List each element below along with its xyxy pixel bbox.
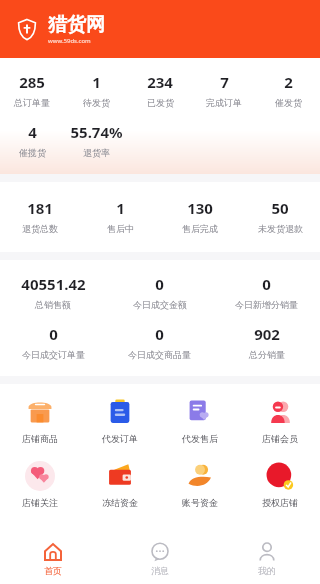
button[interactable]: 首页 [0,534,106,584]
button[interactable]: 0 [106,274,213,310]
staticText: 完成订单 [206,97,242,108]
staticText: 待发货 [83,97,110,108]
button[interactable]: 冻结资金 [80,460,160,508]
staticText: 已发货 [147,97,174,108]
staticText: 1 [116,198,125,218]
button[interactable]: 50 [240,198,320,234]
staticText: 催发货 [275,97,302,108]
staticText: 首页 [44,565,62,576]
button[interactable]: 40551.42 [0,274,106,310]
button[interactable]: 授权店铺 [240,460,320,508]
staticText: 今日新增分销量 [235,299,298,310]
staticText: 未发货退款 [258,223,303,234]
button[interactable]: 234 [128,72,192,108]
staticText: 冻结资金 [102,497,138,508]
staticText: 2 [284,72,293,92]
button[interactable]: 285 [0,72,64,108]
staticText: 今日成交商品量 [128,349,191,360]
staticText: 代发售后 [182,433,218,444]
staticText: 40551.42 [21,274,86,294]
button[interactable]: 账号资金 [160,460,240,508]
staticText: 代发订单 [102,433,138,444]
button[interactable]: 代发订单 [80,396,160,444]
staticText: 0 [49,324,58,344]
staticText: www.59ds.com [48,37,91,45]
staticText: 130 [187,198,213,218]
staticText: 902 [254,324,280,344]
staticText: 店铺商品 [22,433,58,444]
button[interactable]: 店铺商品 [0,396,80,444]
staticText: 我的 [258,565,276,576]
staticText: 退货率 [83,147,110,158]
staticText: 234 [147,72,173,92]
staticText: 50 [271,198,289,218]
staticText: 7 [220,72,229,92]
staticText: 授权店铺 [262,497,298,508]
staticText: 0 [155,324,164,344]
button[interactable]: 902 [213,324,320,360]
staticText: 0 [155,274,164,294]
staticText: 消息 [151,565,169,576]
staticText: 售后完成 [182,223,218,234]
staticText: 店铺关注 [22,497,58,508]
staticText: 总分销量 [249,349,285,360]
button[interactable]: 7 [192,72,256,108]
button[interactable]: 1 [80,198,160,234]
button[interactable]: 代发售后 [160,396,240,444]
staticText: 总订单量 [14,97,50,108]
button[interactable]: 181 [0,198,80,234]
button[interactable]: 55.74% [64,122,128,158]
button[interactable]: 1 [64,72,128,108]
staticText: 285 [19,72,45,92]
button[interactable]: 0 [106,324,213,360]
staticText: 退货总数 [22,223,58,234]
staticText: 55.74% [70,122,123,142]
staticText: 总销售额 [35,299,71,310]
button[interactable]: 0 [0,324,106,360]
staticText: 181 [27,198,53,218]
staticText: 账号资金 [182,497,218,508]
button[interactable]: 我的 [213,534,320,584]
staticText: 售后中 [107,223,134,234]
staticText: 今日成交金额 [133,299,187,310]
staticText: 今日成交订单量 [22,349,85,360]
button[interactable]: 2 [256,72,320,108]
staticText: 0 [262,274,271,294]
button[interactable]: 店铺关注 [0,460,80,508]
button[interactable]: 0 [213,274,320,310]
button[interactable]: 消息 [106,534,213,584]
staticText: 4 [28,122,37,142]
button[interactable]: 130 [160,198,240,234]
staticText: 猎货网 [48,13,105,37]
staticText: 催揽货 [19,147,46,158]
button[interactable]: 4 [0,122,64,158]
staticText: 店铺会员 [262,433,298,444]
staticText: 1 [92,72,101,92]
button[interactable]: 店铺会员 [240,396,320,444]
